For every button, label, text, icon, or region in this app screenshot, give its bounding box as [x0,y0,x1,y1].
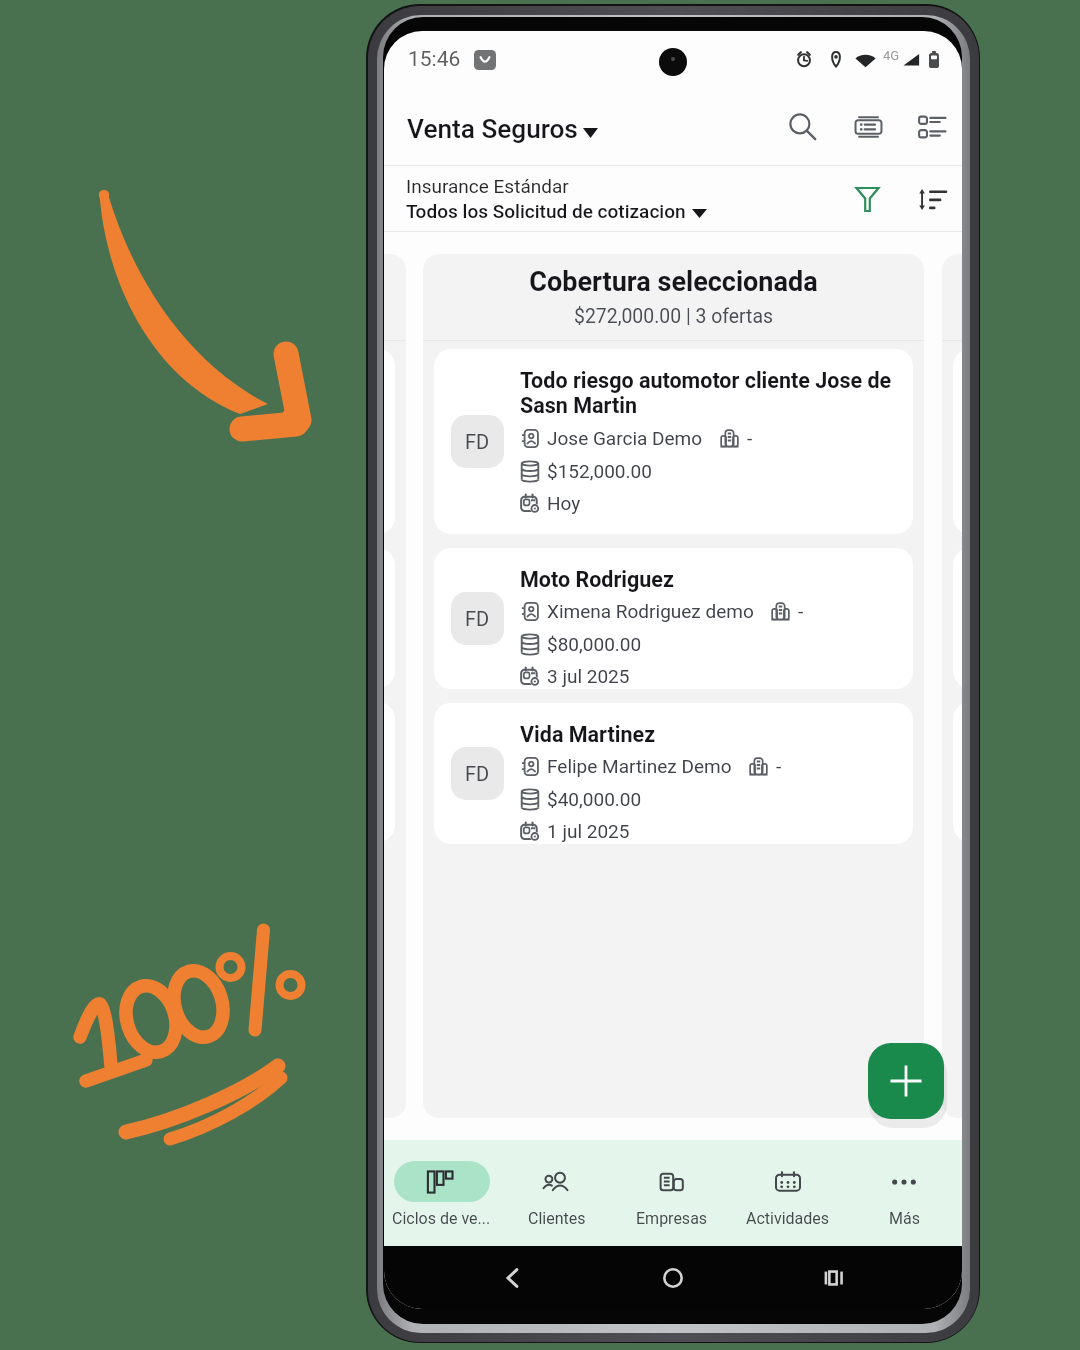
staticText: $80,000.00 [547,633,642,655]
staticText: Todo riesgo automotor cliente Jose de Sa… [520,368,902,419]
staticText: Hoy [547,492,581,514]
button[interactable]: Search [777,101,829,153]
button[interactable]: Insurance Estándar [406,175,707,222]
staticText: Empresas [636,1209,708,1228]
staticText: $152,000.00 [547,460,652,482]
button[interactable]: Ciclos de ve... [384,1140,499,1246]
staticText: $272,000.00 | 3 ofertas [423,305,924,328]
staticText: 1 jul 2025 [547,820,630,842]
staticText: - [747,427,753,449]
staticText: Vida Martinez [520,722,656,747]
button[interactable]: Add [868,1043,944,1119]
staticText: FD [465,430,490,453]
button[interactable]: Venta Seguros [407,114,598,145]
staticText: Más [889,1209,920,1228]
staticText: 15:46 [408,47,461,72]
staticText: 4G [883,48,900,63]
button[interactable]: FD [434,548,913,689]
button[interactable]: Empresas [614,1140,730,1246]
staticText: Todos los Solicitud de cotizacion [406,200,686,222]
staticText: - [776,755,782,777]
staticText: Ximena Rodriguez demo [547,600,754,622]
staticText: Clientes [528,1209,586,1228]
button[interactable]: Clientes [499,1140,614,1246]
button[interactable]: Más [846,1140,962,1246]
staticText: Actividades [746,1209,830,1228]
staticText: Ciclos de ve... [392,1209,491,1228]
button[interactable]: Filter [843,175,891,223]
button[interactable]: Actividades [730,1140,846,1246]
button[interactable]: Card view [842,101,894,153]
staticText: - [798,600,804,622]
staticText: Venta Seguros [407,114,578,145]
button[interactable]: Recents [819,1264,847,1292]
staticText: Jose Garcia Demo [547,427,703,449]
button[interactable]: Sort [908,175,956,223]
button[interactable]: List view [906,101,958,153]
staticText: FD [465,762,490,785]
button[interactable]: FD [434,703,913,844]
staticText: Moto Rodriguez [520,567,674,592]
button[interactable]: FD [434,349,913,534]
staticText: Cobertura seleccionada [423,266,924,298]
staticText: FD [465,607,490,630]
staticText: 3 jul 2025 [547,665,630,687]
button[interactable]: Back [499,1264,527,1292]
button[interactable]: Home [659,1264,687,1292]
staticText: Felipe Martinez Demo [547,755,732,777]
staticText: Insurance Estándar [406,175,569,197]
staticText: $40,000.00 [547,788,642,810]
